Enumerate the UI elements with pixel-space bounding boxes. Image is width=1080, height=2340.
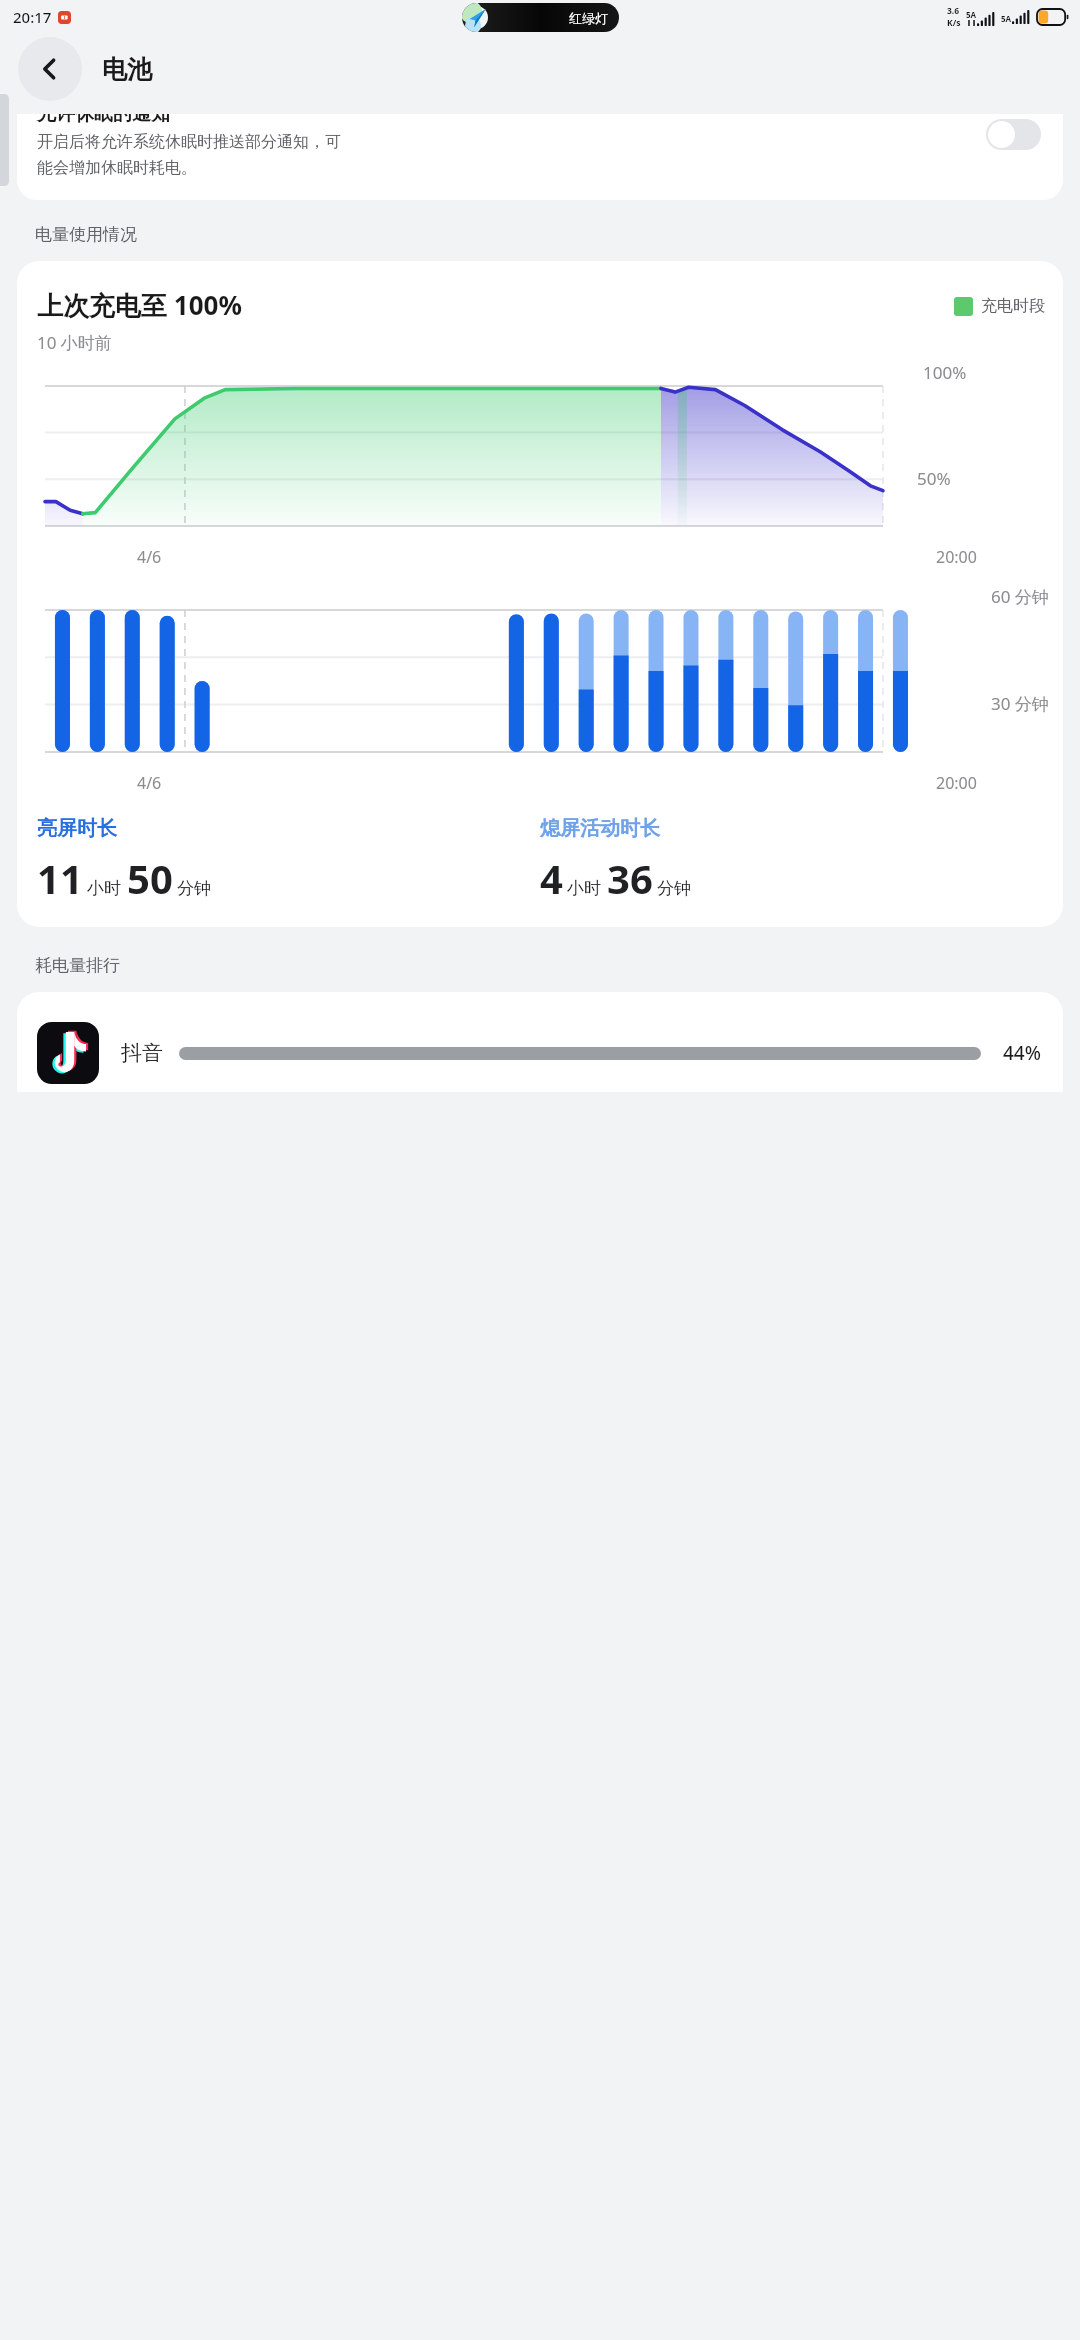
staticText: 4/6 (137, 772, 162, 794)
staticText: 充电时段 (981, 296, 1045, 316)
staticText: 50 (127, 851, 173, 905)
staticText: 小时 (567, 878, 601, 899)
staticText: 5A (1001, 13, 1012, 24)
staticText: 上次充电至 100% (37, 287, 242, 323)
staticText: 熄屏活动时长 (540, 816, 660, 841)
staticText: 60 分钟 (991, 585, 1049, 608)
button[interactable]: 上次充电至 100% (17, 261, 1063, 927)
staticText: K/s (947, 17, 961, 29)
staticText: 20:00 (936, 772, 977, 794)
staticText: 100% (923, 361, 967, 384)
button[interactable]: 允许休眠的通知 (17, 114, 1063, 200)
staticText: 3.6 (947, 5, 960, 17)
staticText: 分钟 (657, 878, 691, 899)
staticText: 抖音 (121, 1040, 163, 1066)
staticText: 11 (37, 851, 83, 905)
staticText: 小时 (87, 878, 121, 899)
staticText: 分钟 (177, 878, 211, 899)
button[interactable]: 返回 (18, 37, 82, 101)
staticText: 50% (917, 467, 951, 490)
staticText: 红绿灯 (569, 10, 608, 26)
staticText: 电池 (102, 54, 152, 85)
staticText: 44% (1003, 1040, 1041, 1066)
staticText: 开启后将允许系统休眠时推送部分通知，可 能会增加休眠时耗电。 (37, 132, 341, 178)
staticText: 允许休眠的通知 (37, 114, 170, 126)
staticText: 20:17 (13, 7, 52, 27)
staticText: 30 分钟 (991, 692, 1049, 715)
staticText: 电量使用情况 (35, 224, 137, 245)
staticText: 36 (607, 851, 653, 905)
button[interactable]: 允许休眠的通知开关 (986, 119, 1041, 150)
staticText: 耗电量排行 (35, 955, 120, 976)
button[interactable]: 抖音 (17, 992, 1063, 1092)
button[interactable]: 红绿灯胶囊 (462, 3, 619, 32)
staticText: 20:00 (936, 546, 977, 568)
staticText: 5A (966, 9, 977, 20)
staticText: 10 小时前 (37, 331, 112, 354)
staticText: 4/6 (137, 546, 162, 568)
staticText: 4 (540, 851, 563, 905)
staticText: 亮屏时长 (37, 816, 117, 841)
